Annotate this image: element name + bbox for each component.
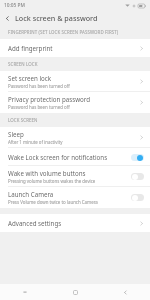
button[interactable]: Back xyxy=(0,11,15,25)
staticText: Add fingerprint xyxy=(8,44,53,52)
staticText: Wake Lock screen for notifications xyxy=(8,153,108,161)
staticText: 10:05 PM xyxy=(4,2,25,9)
button[interactable]: Back xyxy=(100,284,150,300)
staticText: Pressing volume buttons wakes the device xyxy=(8,178,96,184)
button[interactable]: Privacy protection password xyxy=(0,92,150,113)
staticText: Privacy protection password xyxy=(8,95,90,103)
staticText: Advanced settings xyxy=(8,219,62,227)
button[interactable]: Wake with volume buttons xyxy=(0,166,150,187)
staticText: Launch Camera xyxy=(8,190,54,198)
button[interactable]: Sleep xyxy=(0,127,150,148)
staticText: Sleep xyxy=(8,130,24,138)
button[interactable]: Home xyxy=(50,284,100,300)
button[interactable]: Enabled xyxy=(131,154,144,161)
staticText: Password has been turned off xyxy=(8,83,70,89)
button[interactable]: Disabled xyxy=(131,194,144,201)
staticText: LOCK SCREEN xyxy=(8,117,38,123)
staticText: After 1 minute of inactivity xyxy=(8,139,63,145)
staticText: FINGERPRINT (SET LOCK SCREEN PASSWORD FI… xyxy=(8,29,119,35)
button[interactable]: Advanced settings xyxy=(0,214,150,232)
button[interactable]: Recents xyxy=(0,284,50,300)
staticText: Lock screen & password xyxy=(15,13,98,23)
staticText: Wake with volume buttons xyxy=(8,169,86,177)
staticText: Set screen lock xyxy=(8,74,52,82)
button[interactable]: Add fingerprint xyxy=(0,39,150,57)
staticText: SCREEN LOCK xyxy=(8,61,38,67)
staticText: Password has been turned off xyxy=(8,104,70,110)
staticText: Press Volume down twice to launch Camera xyxy=(8,199,98,205)
button[interactable]: Wake Lock screen for notifications xyxy=(0,148,150,166)
button[interactable]: Launch Camera xyxy=(0,187,150,208)
button[interactable]: Disabled xyxy=(131,173,144,180)
button[interactable]: Set screen lock xyxy=(0,71,150,92)
